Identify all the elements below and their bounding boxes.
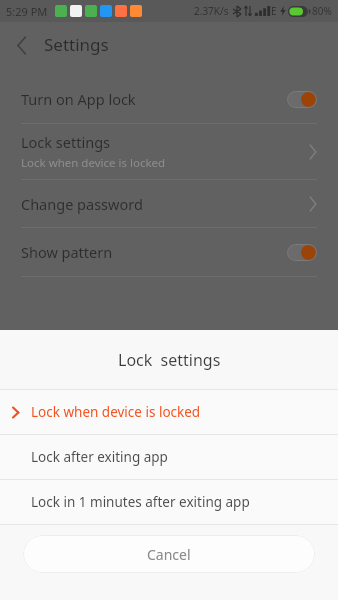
button[interactable]: Change password	[0, 180, 338, 227]
staticText: Settings	[44, 33, 109, 56]
staticText: Turn on App lock	[21, 89, 136, 109]
button[interactable]: Lock settings	[0, 124, 338, 179]
staticText: Cancel	[147, 545, 191, 564]
staticText: Lock when device is locked	[31, 403, 201, 421]
staticText: E	[271, 4, 277, 18]
button[interactable]: Lock in 1 minutes after exiting app	[0, 480, 338, 524]
staticText: 80%	[312, 4, 332, 18]
button[interactable]: Lock when device is locked	[0, 390, 338, 434]
staticText: 5:29 PM	[6, 4, 48, 19]
staticText: Show pattern	[21, 242, 113, 262]
staticText: Lock settings	[118, 349, 221, 371]
staticText: Lock settings	[21, 132, 111, 152]
staticText: 2.37K/s	[194, 4, 229, 18]
staticText: Lock when device is locked	[21, 155, 166, 171]
button[interactable]: Back	[0, 23, 44, 67]
button[interactable]: Turn on App lock	[0, 75, 338, 123]
button[interactable]: Cancel	[23, 535, 315, 573]
button[interactable]: Lock after exiting app	[0, 435, 338, 479]
staticText: Change password	[21, 194, 143, 214]
staticText: Lock in 1 minutes after exiting app	[31, 493, 250, 511]
button[interactable]: Show pattern	[0, 228, 338, 276]
staticText: Lock after exiting app	[31, 448, 168, 466]
